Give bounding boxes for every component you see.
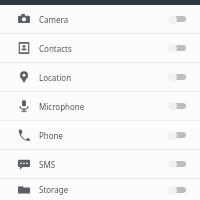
button[interactable]: SMS <box>0 150 200 178</box>
button[interactable]: Camera <box>0 5 200 33</box>
button[interactable]: Toggle permission <box>168 157 188 171</box>
button[interactable]: Contacts <box>0 34 200 62</box>
staticText: Phone <box>39 130 64 141</box>
staticText: SMS <box>39 159 56 170</box>
staticText: Microphone <box>39 101 85 112</box>
button[interactable]: Toggle permission <box>168 99 188 113</box>
button[interactable]: Microphone <box>0 92 200 120</box>
staticText: Location <box>39 72 72 83</box>
staticText: Storage <box>39 184 69 195</box>
button[interactable]: Phone <box>0 121 200 149</box>
button[interactable]: Toggle permission <box>168 12 188 26</box>
button[interactable]: Toggle permission <box>168 70 188 84</box>
button[interactable]: Storage <box>0 179 200 200</box>
button[interactable]: Toggle permission <box>168 128 188 142</box>
button[interactable]: Location <box>0 63 200 91</box>
staticText: Contacts <box>39 43 72 54</box>
button[interactable]: Toggle permission <box>168 183 188 197</box>
staticText: Camera <box>39 14 69 25</box>
button[interactable]: Toggle permission <box>168 41 188 55</box>
